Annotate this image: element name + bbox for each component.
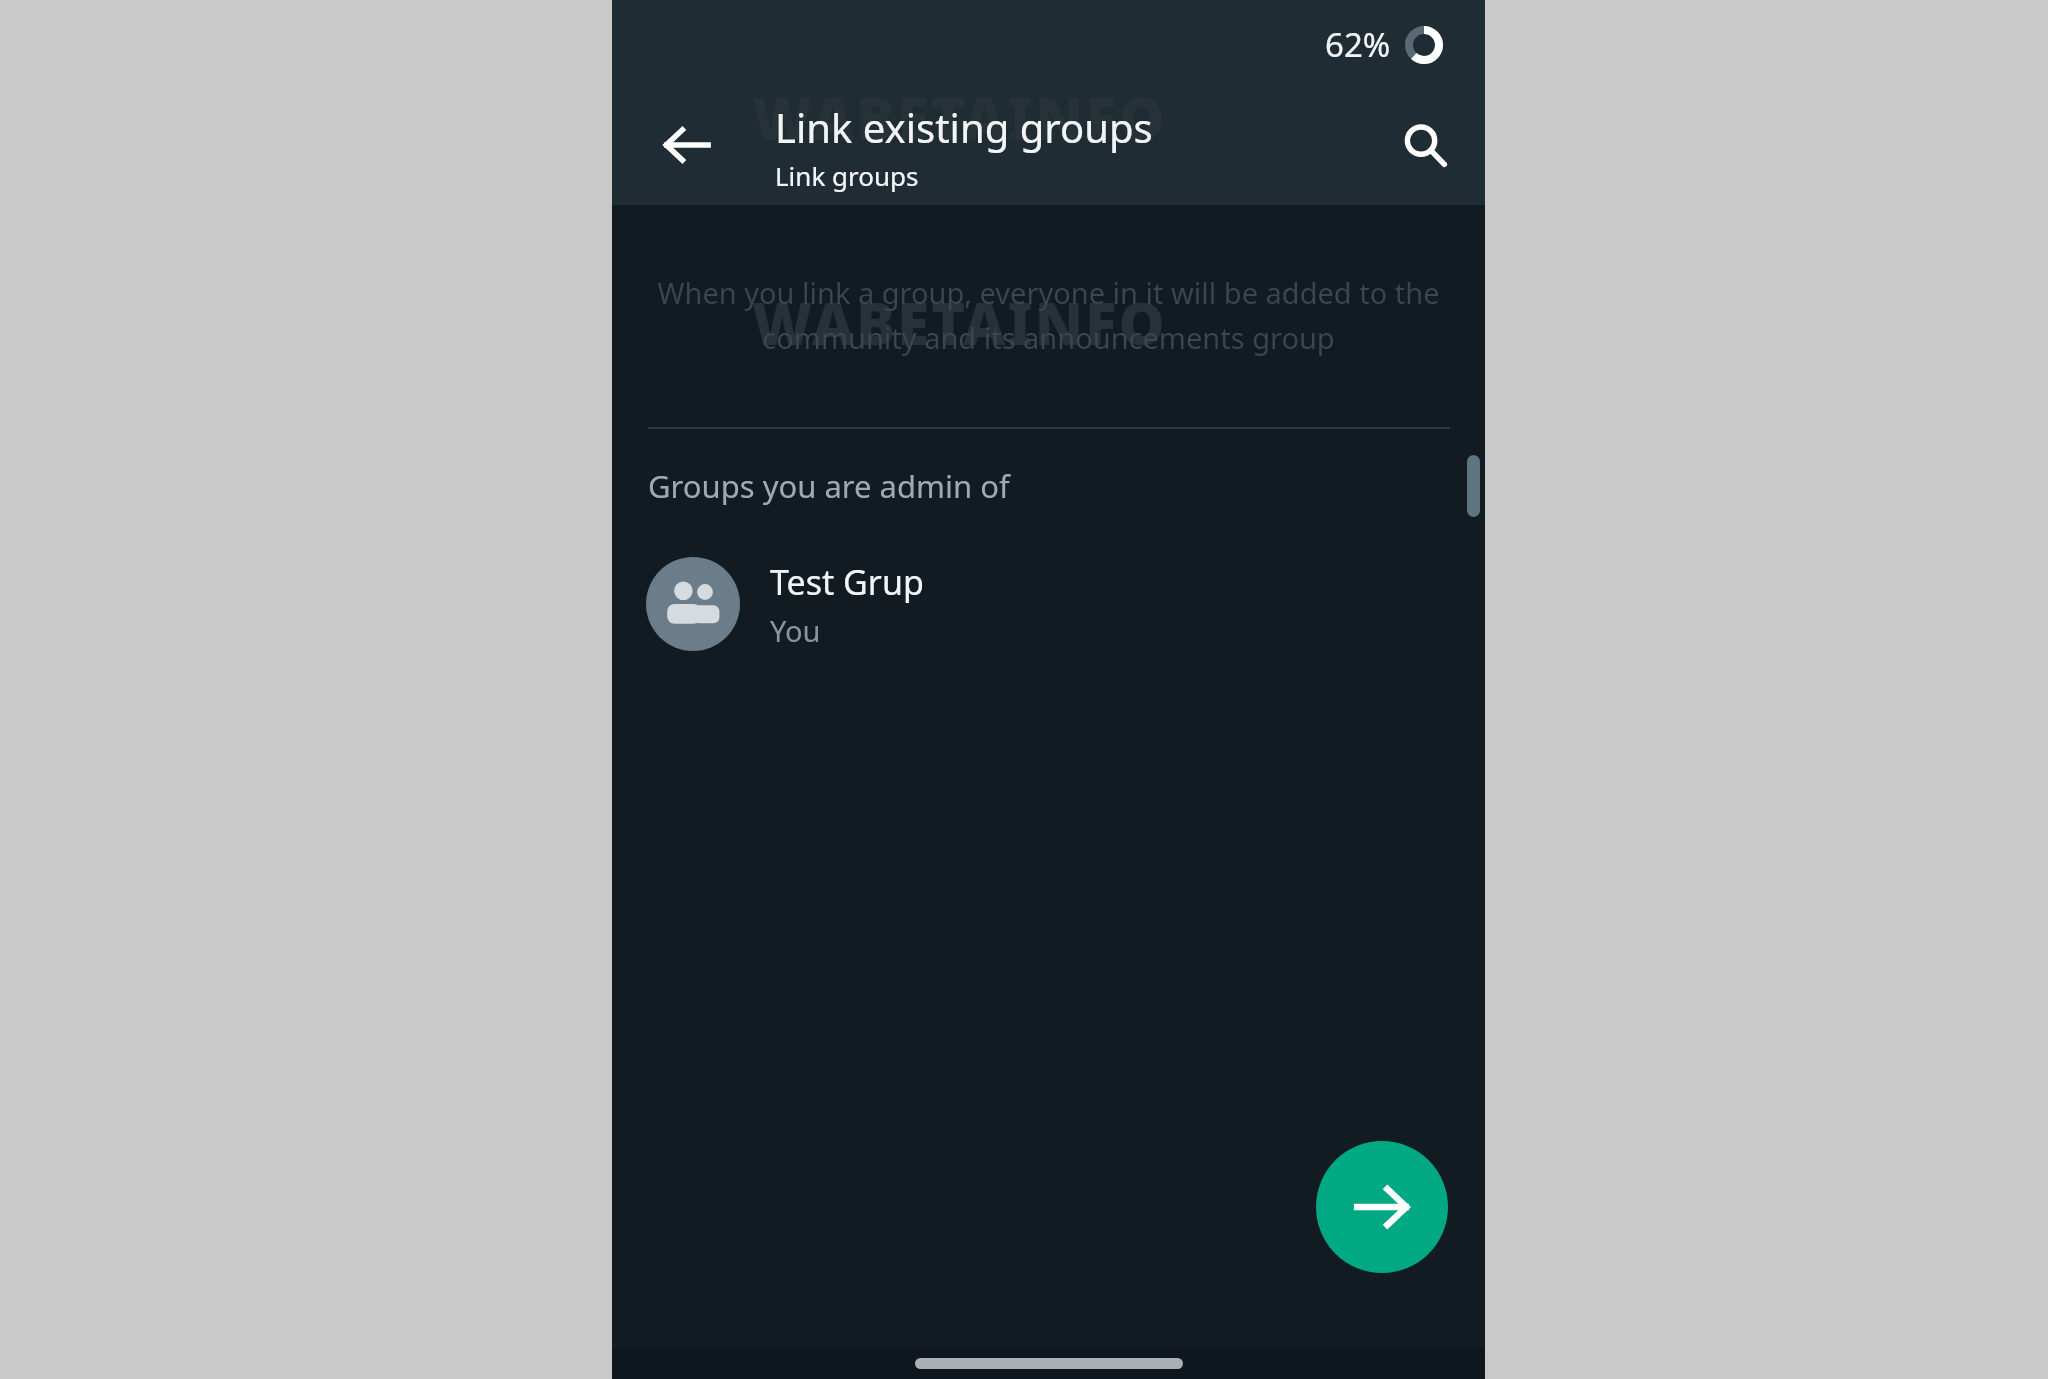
staticText: Test Grup [770, 559, 924, 605]
staticText: When you link a group, everyone in it wi… [642, 273, 1455, 358]
staticText: Groups you are admin of [648, 465, 1010, 507]
staticText: WABETAINFO [752, 78, 1167, 157]
staticText: WABETAINFO [752, 283, 1167, 362]
button[interactable]: Back [645, 103, 729, 187]
staticText: You [770, 611, 821, 650]
button[interactable]: Next [1316, 1141, 1448, 1273]
staticText: Link existing groups [775, 100, 1153, 154]
button[interactable]: Test Grup [612, 548, 1485, 660]
staticText: Link groups [775, 158, 919, 193]
staticText: 62% [1325, 22, 1391, 67]
button[interactable]: Search [1383, 103, 1467, 187]
